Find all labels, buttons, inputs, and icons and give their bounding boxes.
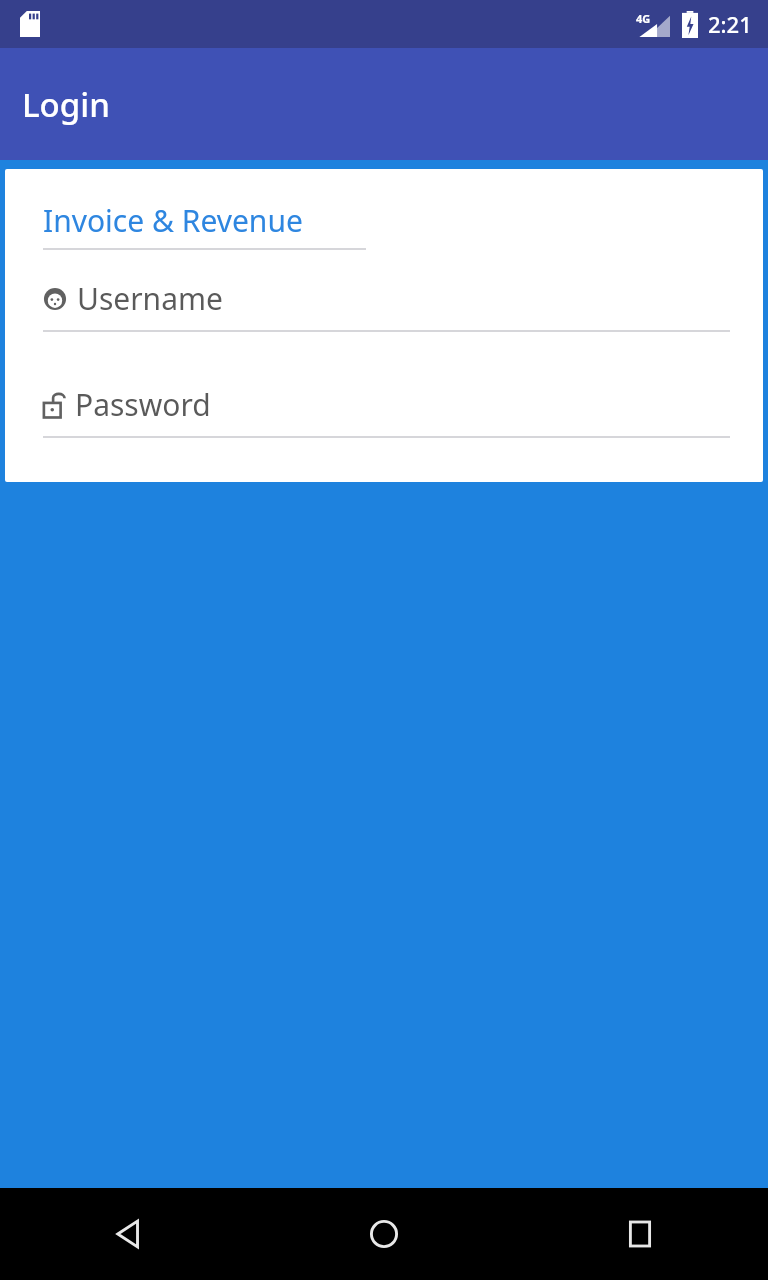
staticText: 2:21 bbox=[708, 9, 752, 39]
staticText: Password bbox=[75, 384, 211, 425]
staticText: 4G bbox=[636, 11, 651, 26]
button[interactable]: Invoice & Revenue bbox=[43, 200, 366, 250]
other: Username bbox=[43, 287, 67, 311]
staticText: Invoice & Revenue bbox=[43, 200, 303, 241]
button[interactable]: Password bbox=[43, 384, 730, 438]
staticText: Username bbox=[77, 278, 223, 319]
button[interactable]: Home bbox=[256, 1188, 512, 1280]
button[interactable]: Recents bbox=[512, 1188, 768, 1280]
staticText: Login bbox=[22, 82, 110, 127]
button[interactable]: Back bbox=[0, 1188, 256, 1280]
other: Password bbox=[43, 392, 65, 418]
button[interactable]: Username bbox=[43, 278, 730, 332]
